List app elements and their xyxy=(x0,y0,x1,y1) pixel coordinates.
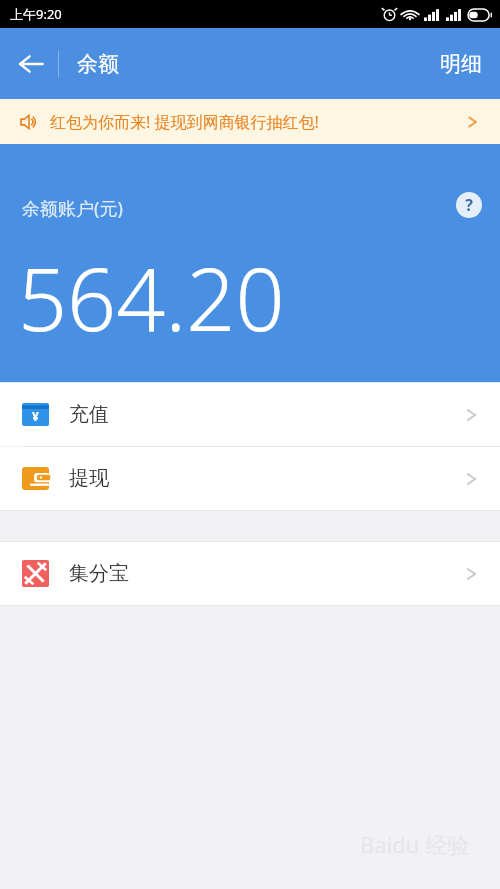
staticText: 提现 xyxy=(69,466,109,491)
staticText: 红包为你而来! 提现到网商银行抽红包! xyxy=(50,111,319,133)
staticText: ? xyxy=(465,194,473,216)
staticText: 集分宝 xyxy=(69,561,129,586)
button[interactable]: Back xyxy=(0,41,58,87)
button[interactable]: 集分宝 xyxy=(0,542,500,605)
staticText: 上午9:20 xyxy=(10,5,62,23)
staticText: 明细 xyxy=(440,51,482,77)
staticText: 充值 xyxy=(69,402,109,427)
button[interactable]: Help xyxy=(456,192,482,218)
staticText: 余额账户(元) xyxy=(22,196,123,221)
button[interactable]: ¥ xyxy=(0,383,500,446)
button[interactable]: 红包为你而来! 提现到网商银行抽红包! xyxy=(0,99,500,144)
staticText: 564.20 xyxy=(18,239,285,356)
button[interactable]: 明细 xyxy=(422,39,500,89)
staticText: Baidu 经验 xyxy=(360,829,470,859)
staticText: 余额 xyxy=(77,51,119,77)
staticText: ¥ xyxy=(32,408,39,424)
button[interactable]: 提现 xyxy=(0,447,500,510)
